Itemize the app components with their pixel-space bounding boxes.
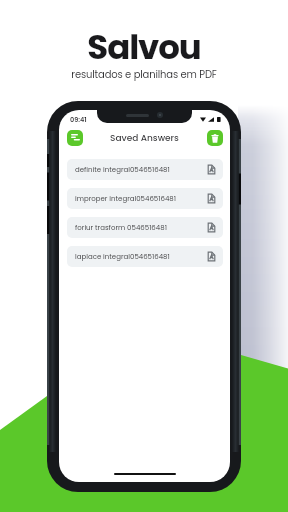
staticText: laplace integral0546516481	[75, 252, 170, 262]
button[interactable]: definite integral0546516481	[67, 159, 223, 180]
button[interactable]: laplace integral0546516481	[67, 246, 223, 267]
staticText: improper integral0546516481	[75, 194, 176, 204]
button[interactable]: Delete	[207, 130, 223, 146]
button[interactable]: Menu	[67, 130, 83, 146]
staticText: definite integral0546516481	[75, 165, 170, 175]
staticText: 09:41	[70, 115, 87, 124]
staticText: Saved Answers	[110, 132, 179, 145]
button[interactable]: improper integral0546516481	[67, 188, 223, 209]
staticText: Salvou	[87, 23, 201, 71]
staticText: foriur trasform 0546516481	[75, 223, 167, 233]
staticText: resultados e planilhas em PDF	[71, 67, 217, 81]
button[interactable]: foriur trasform 0546516481	[67, 217, 223, 238]
